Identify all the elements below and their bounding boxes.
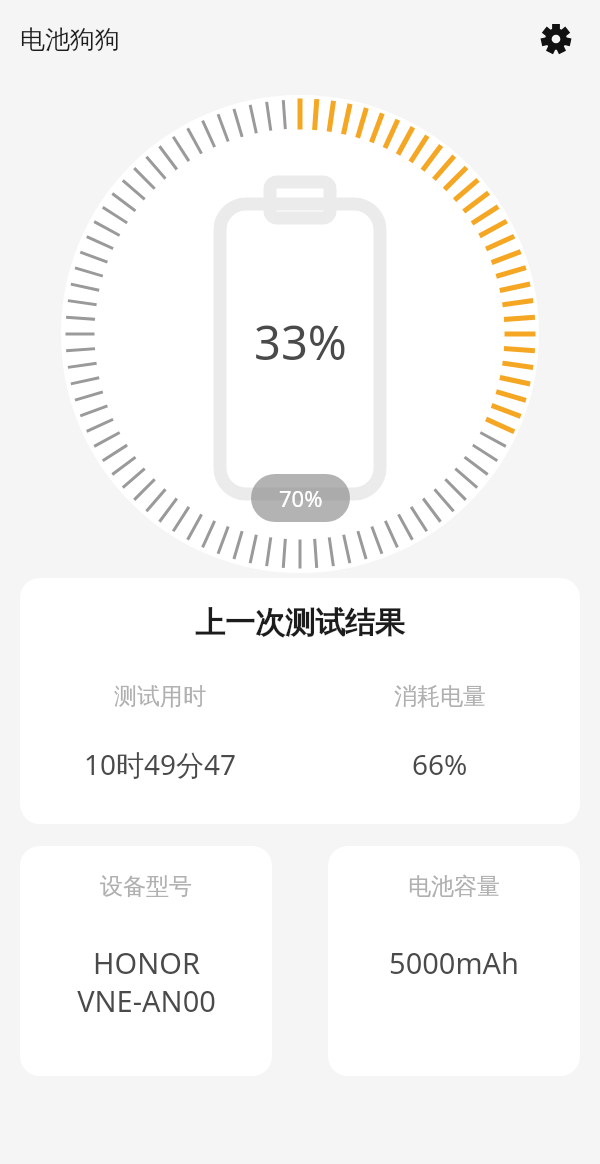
button[interactable]: Settings — [536, 19, 576, 59]
staticText: 测试用时 — [114, 682, 206, 711]
staticText: 设备型号 — [100, 872, 192, 901]
staticText: 电池容量 — [408, 872, 500, 901]
staticText: 消耗电量 — [394, 682, 486, 711]
staticText: 10时49分47 — [84, 745, 237, 783]
staticText: 上一次测试结果 — [195, 604, 405, 642]
staticText: 5000mAh — [389, 943, 519, 982]
staticText: 70% — [279, 483, 323, 513]
staticText: HONOR VNE-AN00 — [77, 943, 216, 1020]
button[interactable]: 上一次测试结果 — [20, 578, 580, 824]
staticText: 33% — [254, 310, 347, 374]
staticText: 66% — [412, 745, 468, 783]
staticText: 电池狗狗 — [20, 24, 120, 55]
button[interactable]: 电池容量 — [328, 846, 580, 1076]
button[interactable]: 设备型号 — [20, 846, 272, 1076]
